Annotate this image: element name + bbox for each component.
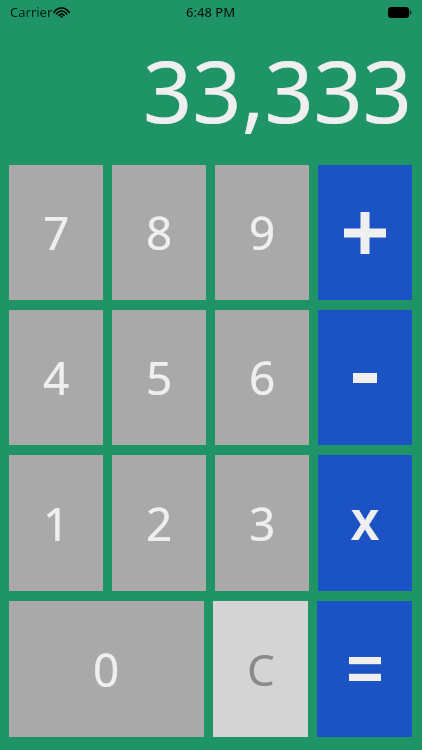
staticText: 6:48 PM (186, 3, 236, 21)
staticText: 0 (93, 638, 120, 701)
staticText: 5 (146, 346, 173, 409)
staticText: C (247, 639, 275, 699)
button[interactable]: 2 (112, 455, 206, 591)
button[interactable]: Equals (317, 601, 412, 737)
button[interactable]: 7 (9, 165, 103, 300)
staticText: 4 (43, 346, 70, 409)
button[interactable]: 5 (112, 310, 206, 445)
button[interactable]: 4 (9, 310, 103, 445)
staticText: 9 (249, 201, 276, 264)
staticText: 8 (146, 201, 173, 264)
button[interactable]: Plus (318, 165, 412, 300)
staticText: 3 (249, 492, 276, 555)
button[interactable]: C (213, 601, 308, 737)
button[interactable]: 6 (215, 310, 309, 445)
staticText: Carrier (10, 3, 53, 21)
button[interactable]: 8 (112, 165, 206, 300)
button[interactable]: 0 (9, 601, 204, 737)
staticText: 6 (249, 346, 276, 409)
button[interactable]: 9 (215, 165, 309, 300)
staticText: 7 (43, 201, 70, 264)
button[interactable]: Minus (318, 310, 412, 445)
button[interactable]: Multiply (318, 455, 412, 591)
staticText: 33,333 (142, 31, 412, 148)
button[interactable]: 3 (215, 455, 309, 591)
staticText: 2 (146, 492, 173, 555)
button[interactable]: 1 (9, 455, 103, 591)
staticText: 1 (43, 492, 70, 555)
staticText: X (351, 495, 380, 552)
